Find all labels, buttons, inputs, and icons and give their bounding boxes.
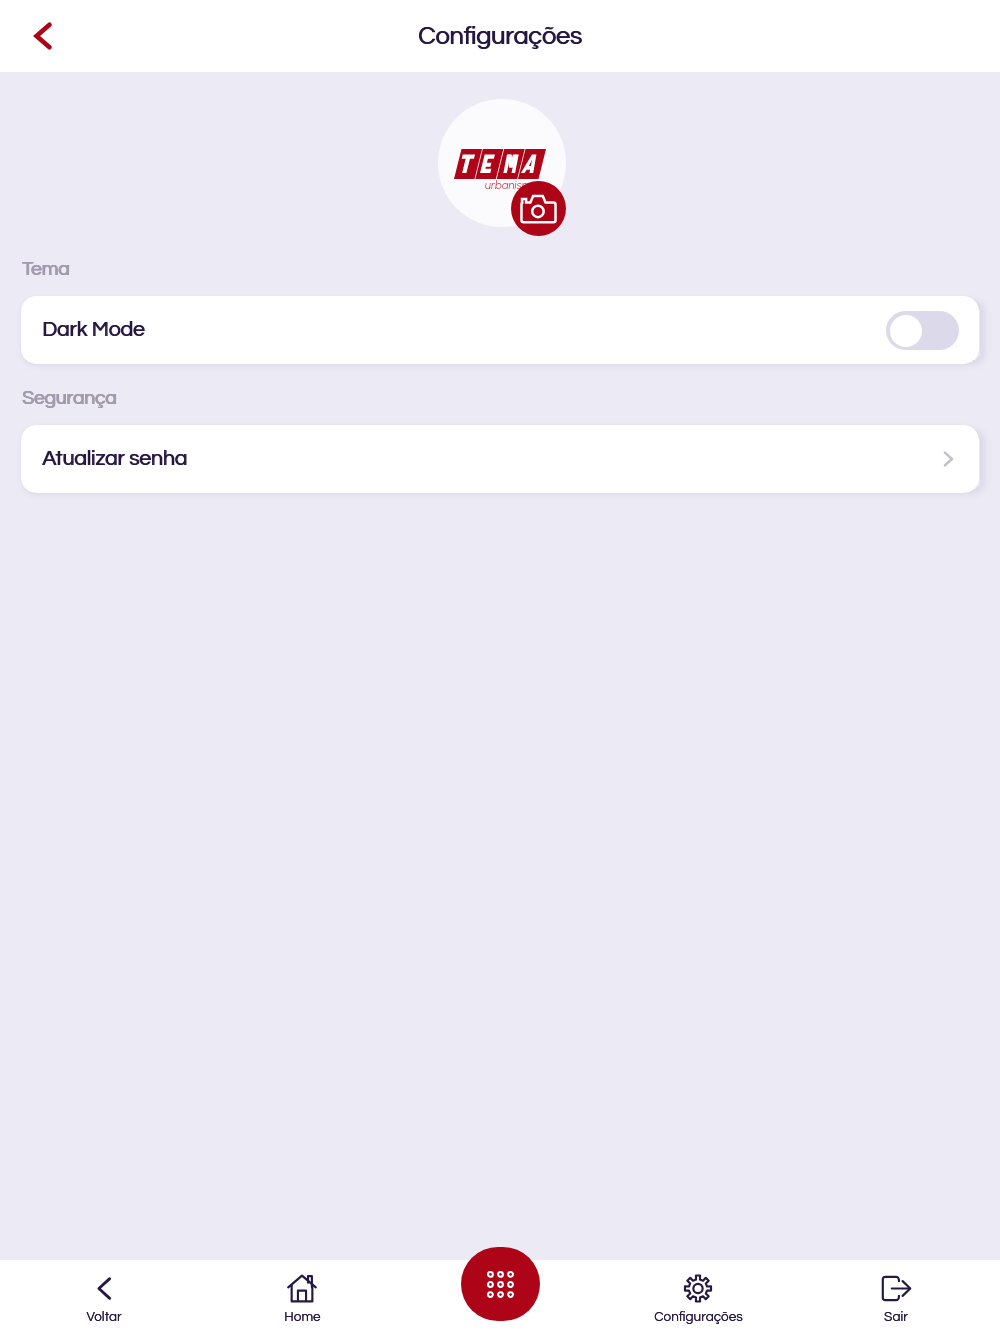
- staticText: Configurações: [654, 1310, 743, 1324]
- button[interactable]: Voltar: [5, 1260, 203, 1334]
- staticText: Sair: [884, 1310, 908, 1324]
- staticText: Configurações: [419, 23, 583, 49]
- staticText: Configurações: [654, 1310, 743, 1324]
- button[interactable]: Voltar: [18, 11, 68, 61]
- staticText: Tema: [23, 259, 71, 279]
- staticText: Atualizar senha: [43, 448, 189, 470]
- button[interactable]: Configurações: [599, 1260, 797, 1334]
- staticText: Segurança: [22, 388, 117, 408]
- staticText: urbanismo: [485, 178, 539, 192]
- button[interactable]: Sair: [797, 1260, 995, 1334]
- staticText: Voltar: [86, 1310, 122, 1324]
- button[interactable]: Alterar foto: [511, 181, 566, 236]
- staticText: Voltar: [86, 1310, 122, 1324]
- staticText: Tema: [22, 259, 70, 279]
- staticText: Sair: [884, 1310, 908, 1324]
- staticText: Configurações: [418, 23, 582, 49]
- staticText: Tema: [22, 259, 70, 279]
- staticText: Home: [284, 1310, 321, 1324]
- staticText: Dark Mode: [42, 319, 145, 341]
- staticText: Dark Mode: [43, 319, 146, 341]
- staticText: Voltar: [86, 1310, 122, 1324]
- staticText: Home: [284, 1310, 321, 1324]
- button[interactable]: Menu: [461, 1247, 540, 1321]
- button[interactable]: Atualizar senha: [21, 425, 979, 493]
- staticText: Home: [284, 1310, 321, 1324]
- staticText: Configurações: [418, 23, 582, 49]
- staticText: Segurança: [22, 388, 117, 408]
- button[interactable]: Dark Mode: [21, 296, 979, 364]
- staticText: Atualizar senha: [42, 448, 188, 470]
- staticText: Dark Mode: [42, 319, 145, 341]
- staticText: Segurança: [23, 388, 118, 408]
- staticText: Atualizar senha: [42, 448, 188, 470]
- staticText: Configurações: [654, 1310, 743, 1324]
- button[interactable]: Dark Mode: [886, 311, 959, 350]
- button[interactable]: urbanismo: [438, 99, 566, 227]
- staticText: Sair: [884, 1310, 908, 1324]
- button[interactable]: Home: [203, 1260, 401, 1334]
